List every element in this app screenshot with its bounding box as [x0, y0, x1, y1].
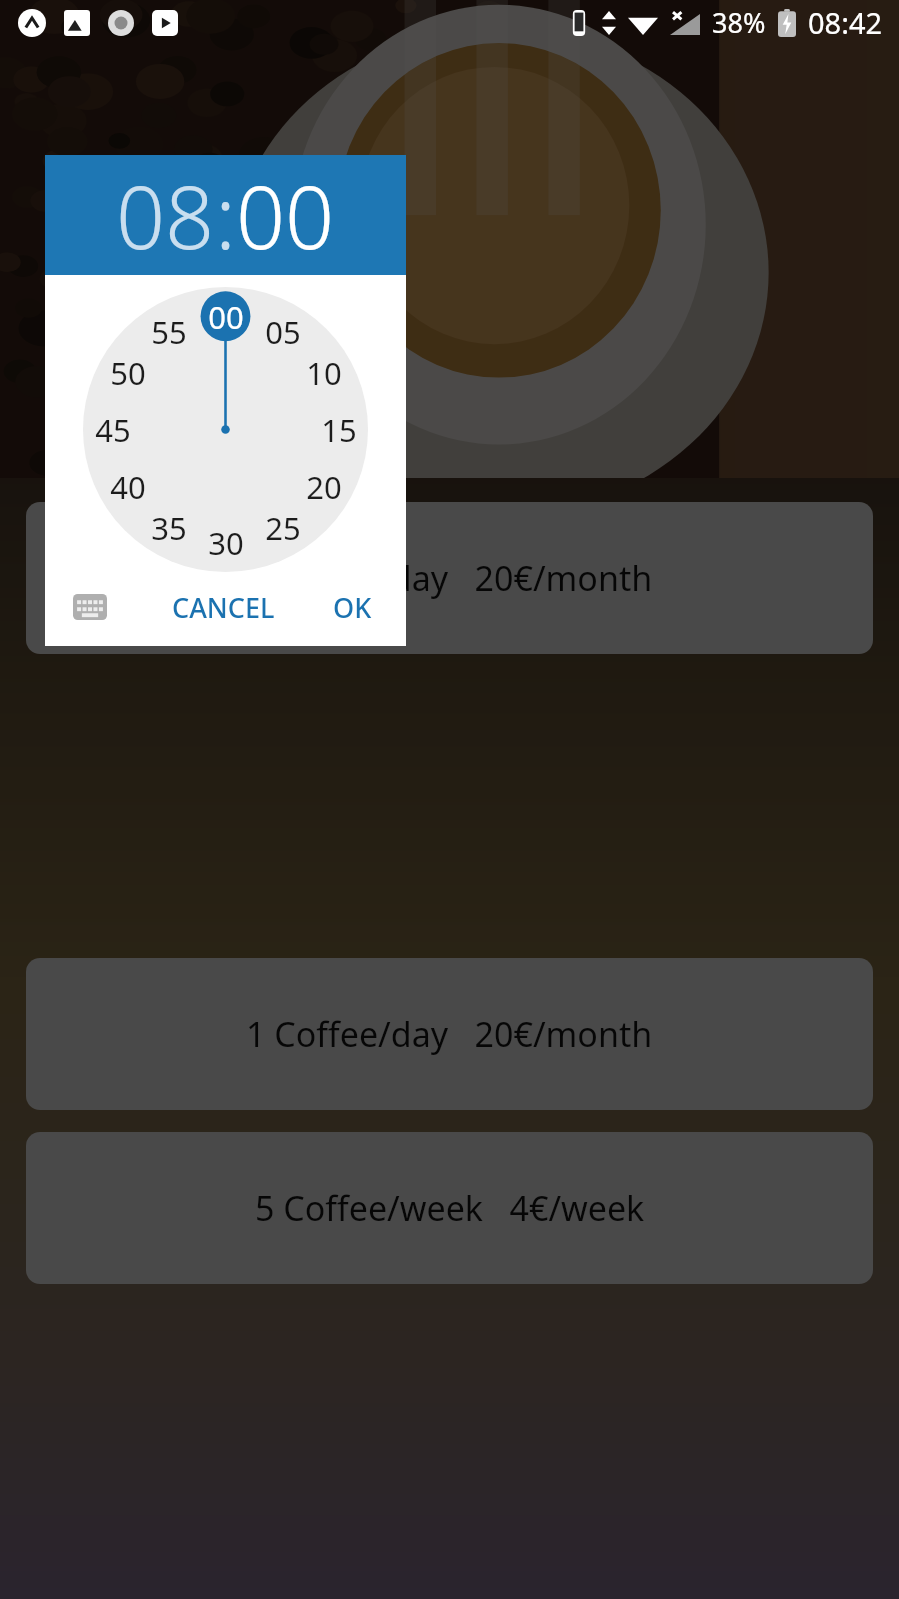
button[interactable]: CANCEL: [160, 581, 287, 634]
staticText: 08:42: [808, 3, 883, 42]
staticText: CANCEL: [172, 589, 275, 626]
staticText: 10: [306, 352, 342, 394]
staticText: 45: [95, 409, 131, 451]
button[interactable]: 1 Coffee/day 20€/month: [26, 502, 873, 654]
staticText: 30: [208, 522, 244, 564]
staticText: 20: [306, 466, 342, 508]
staticText: 1 Coffee/day 20€/month: [246, 1011, 653, 1057]
button[interactable]: Switch to keyboard input: [67, 584, 113, 630]
staticText: 55: [151, 311, 187, 353]
staticText: 25: [265, 507, 301, 549]
staticText: 15: [321, 409, 357, 451]
staticText: 40: [110, 466, 146, 508]
button[interactable]: 5 Coffee/week 4€/week: [26, 1132, 873, 1284]
button[interactable]: 08: [116, 157, 215, 274]
staticText: 05: [265, 311, 301, 353]
staticText: 38%: [712, 4, 766, 41]
staticText: :: [215, 157, 236, 274]
button[interactable]: 1 Coffee/day 20€/month: [26, 958, 873, 1110]
staticText: 00: [208, 296, 244, 338]
button[interactable]: 00: [236, 157, 335, 274]
button[interactable]: 00: [83, 287, 368, 572]
staticText: 35: [151, 507, 187, 549]
staticText: 5 Coffee/week 4€/week: [255, 1185, 645, 1231]
staticText: OK: [333, 589, 372, 626]
staticText: 50: [110, 352, 146, 394]
button[interactable]: OK: [321, 581, 384, 634]
staticText: 1 Coffee/day 20€/month: [246, 555, 653, 601]
